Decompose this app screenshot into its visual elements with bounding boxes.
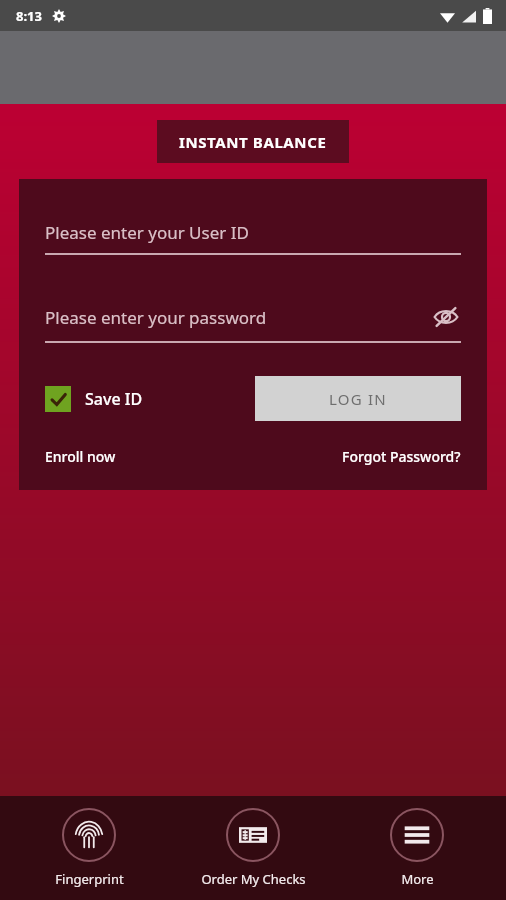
- staticText: More: [401, 870, 434, 888]
- button[interactable]: Save ID: [45, 386, 143, 412]
- button[interactable]: Enroll now: [45, 447, 116, 466]
- staticText: LOG IN: [329, 389, 387, 409]
- button[interactable]: Order My Checks: [178, 802, 328, 894]
- button[interactable]: Forgot Password?: [342, 447, 461, 466]
- staticText: Order My Checks: [201, 870, 306, 888]
- staticText: Please enter your password: [45, 306, 267, 329]
- button[interactable]: INSTANT BALANCE: [157, 120, 349, 163]
- staticText: INSTANT BALANCE: [179, 132, 327, 152]
- button[interactable]: Show password: [431, 302, 461, 332]
- button[interactable]: Fingerprint: [14, 802, 164, 894]
- button[interactable]: LOG IN: [255, 376, 461, 421]
- staticText: 8:13: [16, 7, 42, 25]
- button[interactable]: More: [342, 802, 492, 894]
- button[interactable]: Please enter your password: [45, 302, 461, 343]
- staticText: Fingerprint: [55, 870, 124, 888]
- staticText: Save ID: [85, 388, 143, 410]
- button[interactable]: Please enter your User ID: [45, 221, 461, 255]
- staticText: Please enter your User ID: [45, 221, 249, 244]
